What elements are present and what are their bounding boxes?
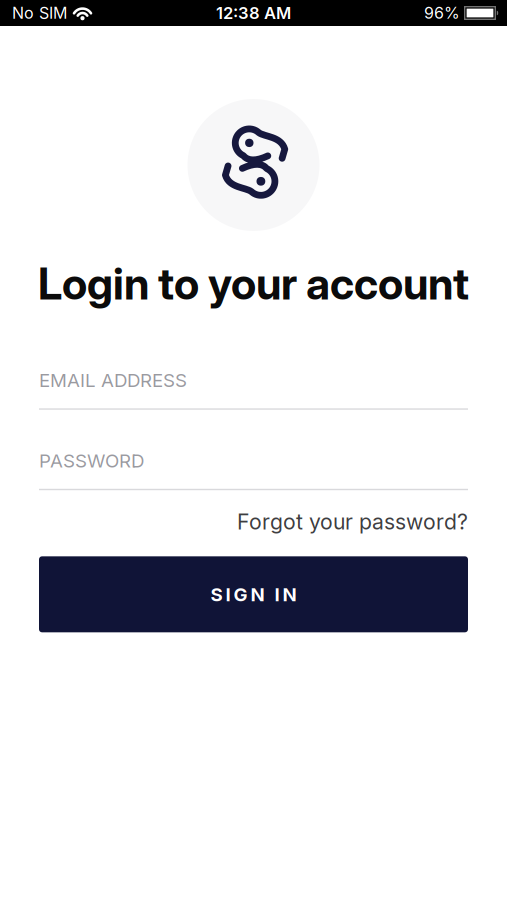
staticText: Forgot your password? — [237, 509, 468, 534]
staticText: 96% — [424, 4, 460, 22]
button[interactable]: EMAIL ADDRESS — [39, 369, 468, 410]
staticText: 12:38 AM — [216, 3, 291, 23]
button[interactable]: Forgot your password? — [237, 509, 468, 534]
button[interactable]: PASSWORD — [39, 450, 468, 490]
staticText: PASSWORD — [39, 450, 144, 472]
staticText: No SIM — [12, 4, 67, 22]
staticText: S I G N I N — [210, 583, 296, 605]
button[interactable]: SIGN IN — [39, 556, 468, 632]
staticText: EMAIL ADDRESS — [39, 369, 187, 391]
staticText: Login to your account — [38, 258, 469, 309]
